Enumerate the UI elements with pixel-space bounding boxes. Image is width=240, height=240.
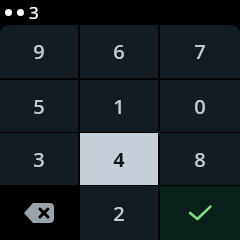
button[interactable]: 0: [160, 80, 240, 132]
staticText: 1: [113, 93, 125, 120]
staticText: 7: [194, 38, 206, 65]
staticText: 4: [113, 146, 125, 173]
button[interactable]: 4: [80, 133, 158, 185]
button[interactable]: Delete: [0, 186, 78, 240]
staticText: 9: [33, 38, 45, 65]
button[interactable]: 2: [80, 186, 158, 240]
staticText: 2: [113, 200, 125, 227]
button[interactable]: 1: [80, 80, 158, 132]
button[interactable]: 3: [0, 133, 78, 185]
staticText: 5: [33, 93, 45, 120]
staticText: 3: [33, 146, 45, 173]
staticText: 8: [194, 146, 206, 173]
button[interactable]: 8: [160, 133, 240, 185]
staticText: 6: [113, 38, 125, 65]
button[interactable]: 6: [80, 25, 158, 78]
button[interactable]: 5: [0, 80, 78, 132]
staticText: 0: [194, 93, 206, 120]
staticText: 3: [29, 1, 39, 24]
button[interactable]: Confirm: [160, 186, 240, 240]
button[interactable]: 7: [160, 25, 240, 78]
button[interactable]: 9: [0, 25, 78, 78]
